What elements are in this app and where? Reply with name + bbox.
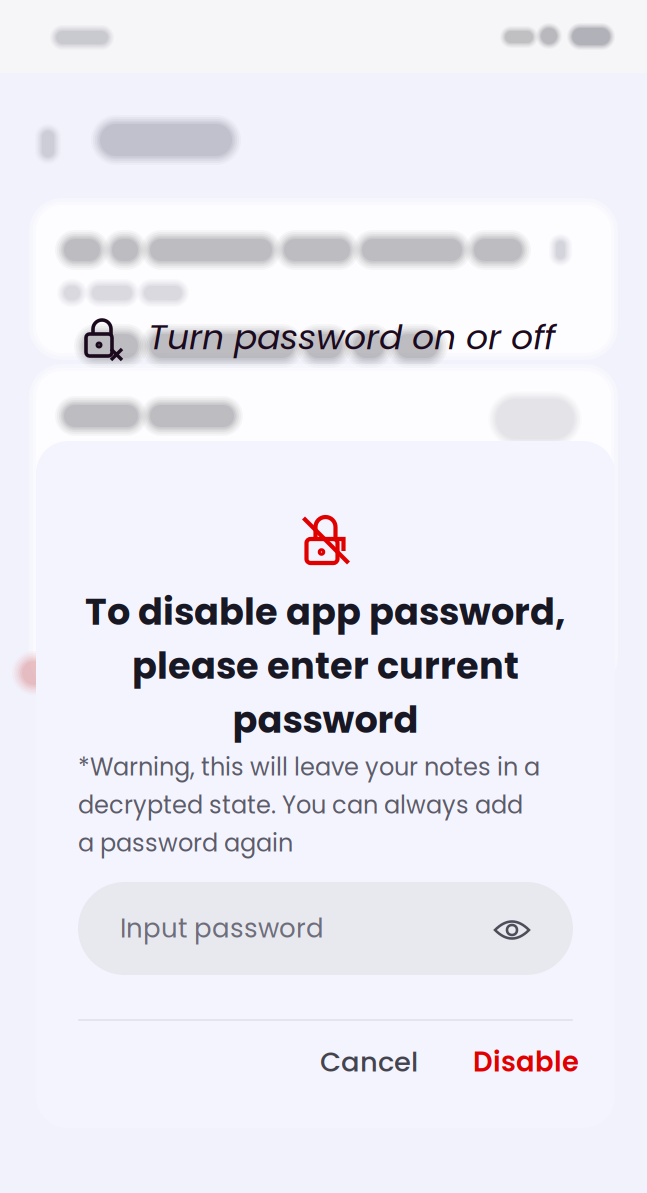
button[interactable]: Disable — [450, 1027, 602, 1097]
staticText: Turn password on or off — [148, 313, 555, 361]
staticText: To disable app password, — [85, 586, 566, 638]
staticText: Disable — [473, 1043, 579, 1081]
staticText: *Warning, this will leave your notes in … — [78, 750, 540, 784]
staticText: decrypted state. You can always add — [78, 788, 523, 822]
button[interactable]: Cancel — [293, 1027, 445, 1097]
button[interactable]: Input password — [78, 882, 573, 975]
staticText: Input password — [120, 910, 324, 947]
staticText: Cancel — [320, 1043, 418, 1081]
staticText: password — [232, 694, 418, 746]
staticText: please enter current — [132, 640, 519, 692]
staticText: a password again — [78, 826, 293, 860]
